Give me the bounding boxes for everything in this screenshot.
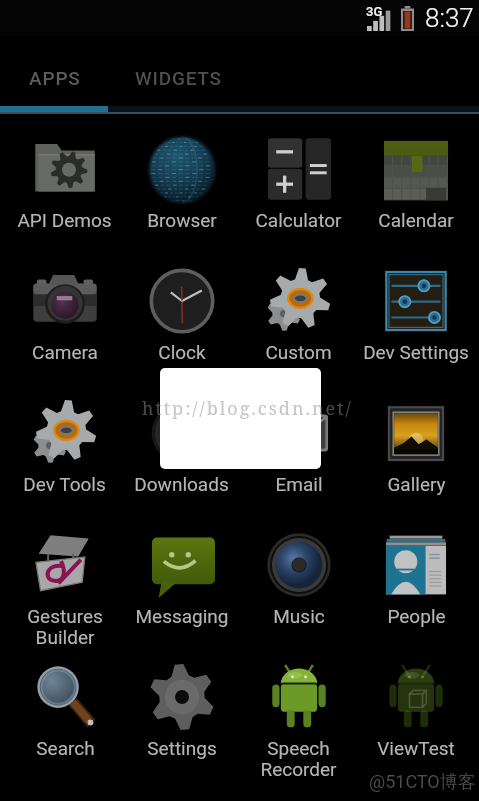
button[interactable]: ViewTest	[357, 658, 474, 790]
button[interactable]: Email	[240, 394, 357, 526]
staticText: Calendar	[378, 209, 454, 231]
staticText: 3G	[366, 4, 383, 19]
staticText: Email	[275, 473, 323, 495]
staticText: Calculator	[255, 209, 342, 231]
staticText: Speech Recorder	[260, 737, 337, 780]
staticText: Dev Settings	[363, 341, 469, 363]
staticText: Search	[36, 737, 95, 759]
staticText: Clock	[158, 341, 206, 363]
button[interactable]: Calendar	[357, 130, 474, 262]
button[interactable]: Settings	[123, 658, 240, 790]
staticText: Settings	[147, 737, 217, 759]
button[interactable]: Camera	[6, 262, 123, 394]
staticText: Gallery	[387, 473, 446, 495]
button[interactable]: Search	[6, 658, 123, 790]
button[interactable]: APPS	[0, 50, 109, 106]
staticText: Messaging	[135, 605, 229, 627]
button[interactable]: Browser	[123, 130, 240, 262]
staticText: Gestures Builder	[27, 605, 103, 648]
button[interactable]: Dev Tools	[6, 394, 123, 526]
button[interactable]: Clock	[123, 262, 240, 394]
staticText: APPS	[29, 67, 81, 89]
button[interactable]: Music	[240, 526, 357, 658]
staticText: Browser	[147, 209, 217, 231]
staticText: People	[387, 605, 446, 627]
staticText: Music	[273, 605, 325, 627]
button[interactable]: Messaging	[123, 526, 240, 658]
staticText: http://blog.csdn.net/	[142, 396, 353, 421]
staticText: 8:37	[425, 3, 474, 33]
button[interactable]: Speech Recorder	[240, 658, 357, 790]
button[interactable]: API Demos	[6, 130, 123, 262]
button[interactable]: Custom	[240, 262, 357, 394]
staticText: Custom	[265, 341, 332, 363]
staticText: WIDGETS	[135, 67, 222, 89]
button[interactable]: WIDGETS	[109, 50, 247, 106]
button[interactable]: Downloads	[123, 394, 240, 526]
button[interactable]: Dev Settings	[357, 262, 474, 394]
staticText: Downloads	[134, 473, 229, 495]
button[interactable]: Gestures Builder	[6, 526, 123, 658]
staticText: @51CTO博客	[369, 771, 476, 794]
staticText: ViewTest	[377, 737, 455, 759]
staticText: API Demos	[17, 209, 112, 231]
staticText: Camera	[32, 341, 98, 363]
button[interactable]: Gallery	[357, 394, 474, 526]
button[interactable]: Calculator	[240, 130, 357, 262]
staticText: Dev Tools	[23, 473, 106, 495]
button[interactable]: People	[357, 526, 474, 658]
